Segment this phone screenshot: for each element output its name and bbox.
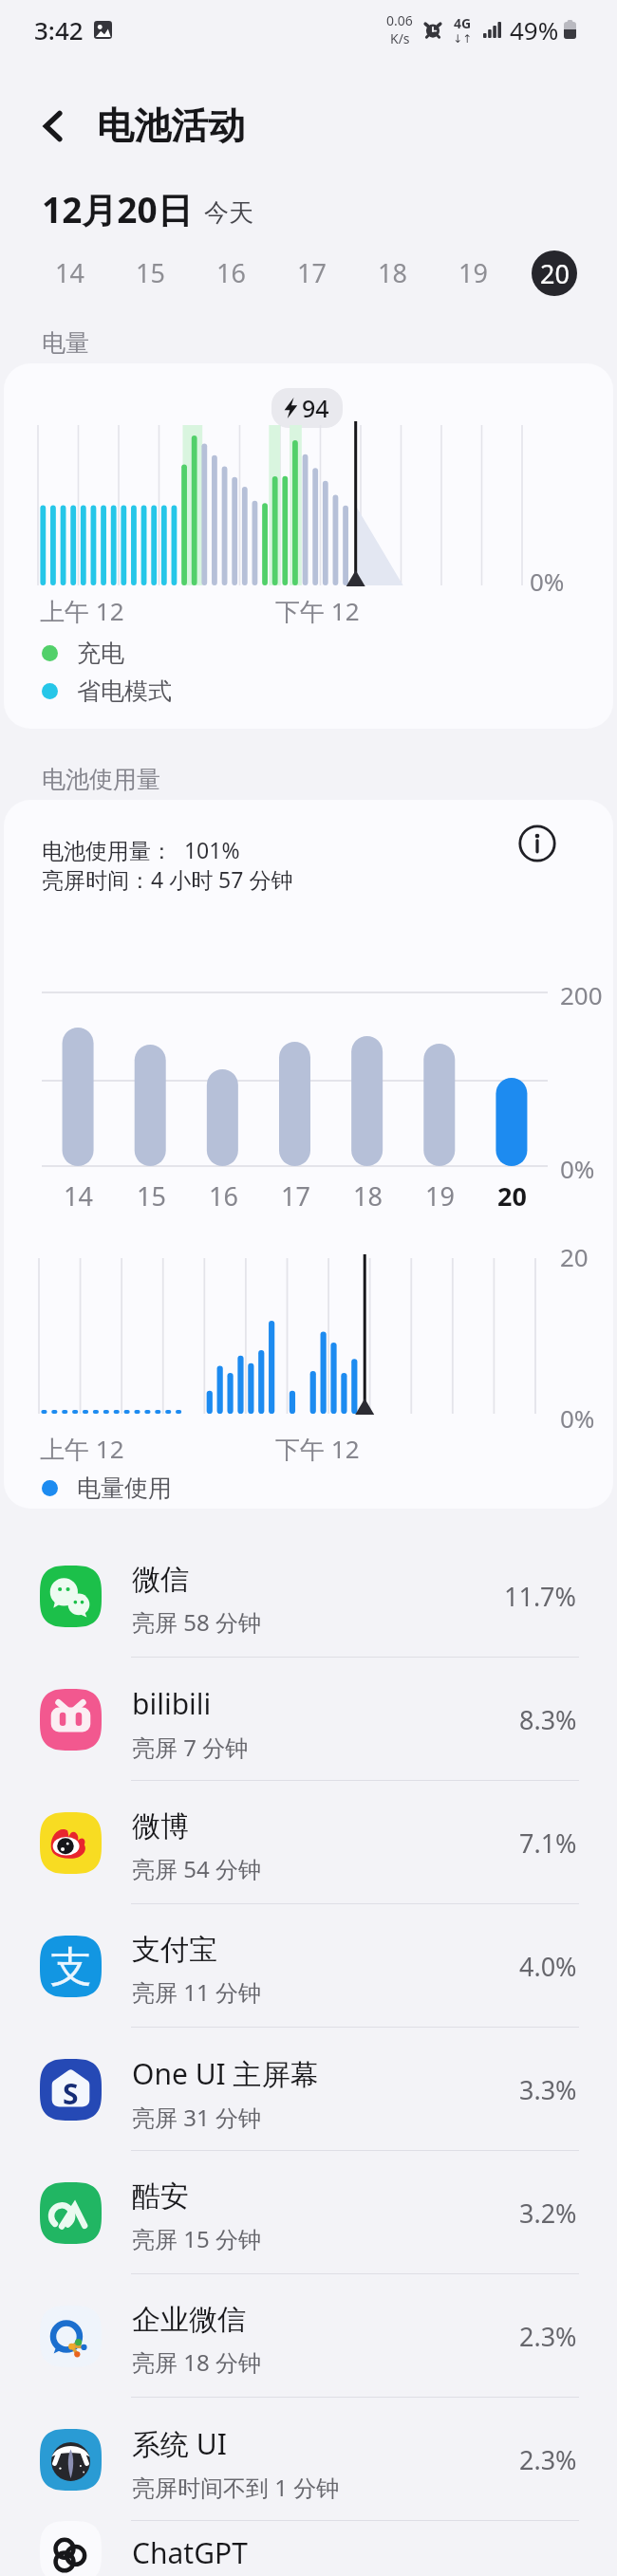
- staticText: 亮屏 31 分钟: [132, 2102, 261, 2133]
- button[interactable]: 15: [110, 242, 191, 304]
- staticText: 充电: [77, 639, 124, 668]
- staticText: 亮屏 7 分钟: [132, 1732, 249, 1763]
- staticText: 94: [302, 392, 329, 424]
- staticText: 亮屏 54 分钟: [132, 1853, 261, 1884]
- staticText: 电量使用: [77, 1473, 172, 1503]
- staticText: 3.2%: [519, 2196, 577, 2231]
- staticText: 200: [560, 978, 603, 1011]
- staticText: 4G: [454, 14, 472, 32]
- staticText: 20: [560, 1240, 589, 1273]
- staticText: 15: [137, 1178, 166, 1214]
- staticText: 下午 12: [275, 594, 360, 628]
- staticText: 7.1%: [519, 1825, 577, 1861]
- staticText: 11.7%: [504, 1579, 577, 1614]
- staticText: 16: [209, 1178, 238, 1214]
- staticText: 49%: [510, 13, 559, 46]
- staticText: 支付宝: [132, 1932, 217, 1968]
- staticText: 亮屏 18 分钟: [132, 2346, 261, 2378]
- button[interactable]: ChatGPT: [0, 2521, 617, 2576]
- staticText: 4.0%: [519, 1949, 577, 1984]
- staticText: 3.3%: [519, 2072, 577, 2107]
- staticText: 上午 12: [40, 594, 124, 628]
- staticText: 下午 12: [275, 1432, 360, 1466]
- staticText: 15: [136, 255, 165, 290]
- staticText: K/s: [390, 29, 410, 47]
- staticText: 0.06: [386, 11, 413, 29]
- button[interactable]: 企业微信: [0, 2274, 617, 2398]
- staticText: 上午 12: [40, 1432, 124, 1466]
- button[interactable]: 18: [352, 242, 433, 304]
- button[interactable]: S: [0, 2028, 617, 2151]
- button[interactable]: bilibili: [0, 1658, 617, 1781]
- staticText: 20: [540, 256, 570, 291]
- button[interactable]: 微信: [0, 1534, 617, 1658]
- staticText: 亮屏时间：4 小时 57 分钟: [42, 864, 293, 894]
- button[interactable]: 16: [191, 242, 271, 304]
- staticText: 2.3%: [519, 2442, 577, 2477]
- staticText: 系统 UI: [132, 2424, 227, 2463]
- button[interactable]: 20: [514, 242, 594, 304]
- button[interactable]: 17: [271, 242, 352, 304]
- staticText: 省电模式: [77, 676, 172, 706]
- staticText: S: [63, 2074, 79, 2113]
- staticText: 电池活动: [97, 102, 245, 149]
- staticText: 19: [425, 1178, 455, 1214]
- staticText: 16: [216, 255, 246, 290]
- staticText: 17: [297, 255, 327, 290]
- button[interactable]: 系统 UI: [0, 2398, 617, 2521]
- staticText: ChatGPT: [132, 2533, 248, 2572]
- button[interactable]: 微博: [0, 1781, 617, 1904]
- staticText: 17: [281, 1178, 310, 1214]
- button[interactable]: 19: [433, 242, 514, 304]
- staticText: 支: [50, 1941, 92, 1993]
- staticText: 8.3%: [519, 1702, 577, 1737]
- staticText: 0%: [560, 1152, 595, 1185]
- staticText: ↓↑: [453, 32, 473, 46]
- staticText: 电池使用量： 101%: [42, 835, 240, 864]
- staticText: 12月20日: [42, 185, 193, 233]
- staticText: 18: [378, 255, 407, 290]
- staticText: 亮屏 15 分钟: [132, 2223, 261, 2254]
- staticText: 微博: [132, 1808, 189, 1844]
- staticText: 18: [353, 1178, 383, 1214]
- button[interactable]: 支: [0, 1904, 617, 2028]
- staticText: 企业微信: [132, 2302, 246, 2338]
- staticText: 19: [458, 255, 488, 290]
- staticText: bilibili: [132, 1684, 212, 1723]
- staticText: 电池使用量: [42, 765, 160, 794]
- staticText: 20: [497, 1178, 527, 1214]
- staticText: 今天: [204, 197, 253, 229]
- staticText: 14: [55, 255, 84, 290]
- staticText: 电量: [42, 328, 89, 358]
- button[interactable]: 14: [28, 242, 110, 304]
- staticText: 微信: [132, 1562, 189, 1598]
- staticText: 0%: [530, 565, 565, 598]
- staticText: One UI 主屏幕: [132, 2054, 319, 2093]
- staticText: 14: [64, 1178, 93, 1214]
- staticText: 亮屏时间不到 1 分钟: [132, 2472, 340, 2503]
- button[interactable]: Info: [514, 821, 560, 866]
- button[interactable]: Back: [28, 102, 78, 151]
- staticText: 0%: [560, 1401, 595, 1435]
- staticText: 酷安: [132, 2178, 189, 2215]
- staticText: 亮屏 58 分钟: [132, 1606, 261, 1638]
- button[interactable]: 酷安: [0, 2151, 617, 2274]
- staticText: 2.3%: [519, 2319, 577, 2354]
- staticText: 亮屏 11 分钟: [132, 1976, 261, 2008]
- staticText: 3:42: [34, 13, 84, 46]
